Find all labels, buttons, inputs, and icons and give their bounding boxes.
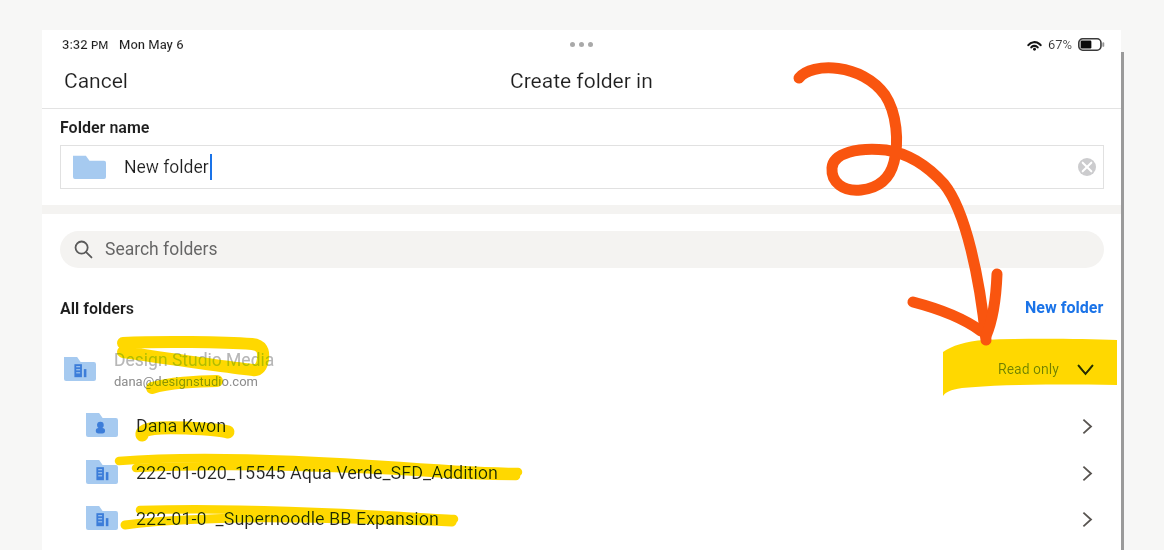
staticText: All folders — [60, 299, 135, 318]
staticText: 222-01-0 _Supernoodle BB Expansion — [136, 508, 439, 529]
button[interactable]: Dana Kwon — [42, 405, 1121, 451]
staticText: PM — [91, 38, 109, 51]
staticText: Dana Kwon — [136, 415, 227, 436]
button[interactable]: Read only — [986, 353, 1105, 385]
staticText: Cancel — [64, 69, 128, 94]
staticText: New folder — [124, 157, 209, 178]
button[interactable]: New folder — [1008, 291, 1121, 326]
button[interactable]: 222-01-0 _Supernoodle BB Expansion — [42, 498, 1121, 544]
staticText: dana@designstudio.com — [114, 374, 258, 389]
button[interactable]: New folder — [60, 145, 1104, 189]
staticText: Design Studio Media — [114, 350, 275, 371]
staticText: 222-01-020_15545 Aqua Verde_SFD_Addition — [136, 462, 499, 483]
button[interactable]: Design Studio Media — [42, 341, 1121, 397]
staticText: Mon May 6 — [119, 37, 184, 52]
button[interactable]: Cancel — [42, 57, 150, 106]
button[interactable]: Search folders — [60, 231, 1104, 268]
staticText: Create folder in — [510, 69, 653, 94]
button[interactable]: Clear text — [1070, 150, 1104, 184]
staticText: Folder name — [60, 118, 150, 137]
staticText: Search folders — [105, 239, 218, 260]
staticText: New folder — [1025, 298, 1104, 317]
staticText: 67% — [1048, 37, 1073, 52]
button[interactable]: 222-01-020_15545 Aqua Verde_SFD_Addition — [42, 452, 1121, 498]
staticText: 3:32 — [62, 37, 88, 52]
staticText: Read only — [998, 361, 1059, 377]
